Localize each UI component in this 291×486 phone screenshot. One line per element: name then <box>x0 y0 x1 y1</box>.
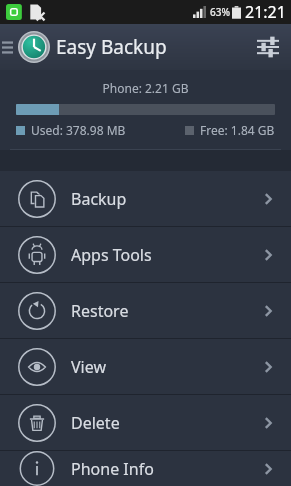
button[interactable]: Delete <box>0 395 291 450</box>
staticText: 63% <box>210 5 230 19</box>
staticText: Used: 378.98 MB <box>31 122 126 138</box>
staticText: Phone Info <box>71 458 154 480</box>
button[interactable]: Apps Tools <box>0 227 291 282</box>
button[interactable]: View <box>0 339 291 394</box>
staticText: Free: 1.84 GB <box>200 122 275 138</box>
button[interactable]: Phone Info <box>0 451 291 486</box>
staticText: 21:21 <box>245 1 286 23</box>
button[interactable]: Restore <box>0 283 291 338</box>
staticText: Apps Tools <box>71 244 152 266</box>
staticText: Restore <box>71 300 129 322</box>
staticText: Delete <box>71 412 120 434</box>
staticText: Easy Backup <box>56 34 167 60</box>
staticText: Backup <box>71 188 127 210</box>
staticText: Phone: 2.21 GB <box>0 80 291 96</box>
button[interactable]: Backup <box>0 171 291 226</box>
button[interactable]: Menu <box>0 24 14 70</box>
staticText: View <box>71 356 107 378</box>
button[interactable]: Settings <box>245 24 291 70</box>
